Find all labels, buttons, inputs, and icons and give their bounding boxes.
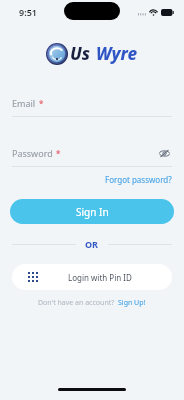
staticText: OR	[85, 238, 99, 250]
button[interactable]: Show password	[156, 145, 172, 161]
button[interactable]: Pin pad	[12, 264, 172, 290]
staticText: Sign In	[76, 205, 109, 219]
button[interactable]: Email	[12, 97, 172, 117]
staticText: *	[56, 148, 61, 159]
staticText: Forgot password?	[105, 174, 172, 185]
staticText: Sign Up!	[118, 298, 146, 308]
button[interactable]: Password	[12, 147, 61, 159]
button[interactable]: Sign In	[10, 199, 174, 224]
staticText: Login with Pin ID	[68, 272, 132, 283]
staticText: Wyre	[96, 42, 138, 65]
staticText: *	[39, 98, 44, 109]
staticText: Password	[12, 147, 53, 159]
staticText: Email	[12, 97, 36, 109]
staticText: 9:51	[19, 6, 37, 18]
button[interactable]: Forgot password?	[105, 174, 172, 185]
other: Pin pad	[28, 272, 38, 282]
staticText: Don't have an account?	[38, 298, 115, 308]
staticText: Us	[70, 42, 91, 65]
button[interactable]: Sign Up!	[118, 298, 146, 308]
